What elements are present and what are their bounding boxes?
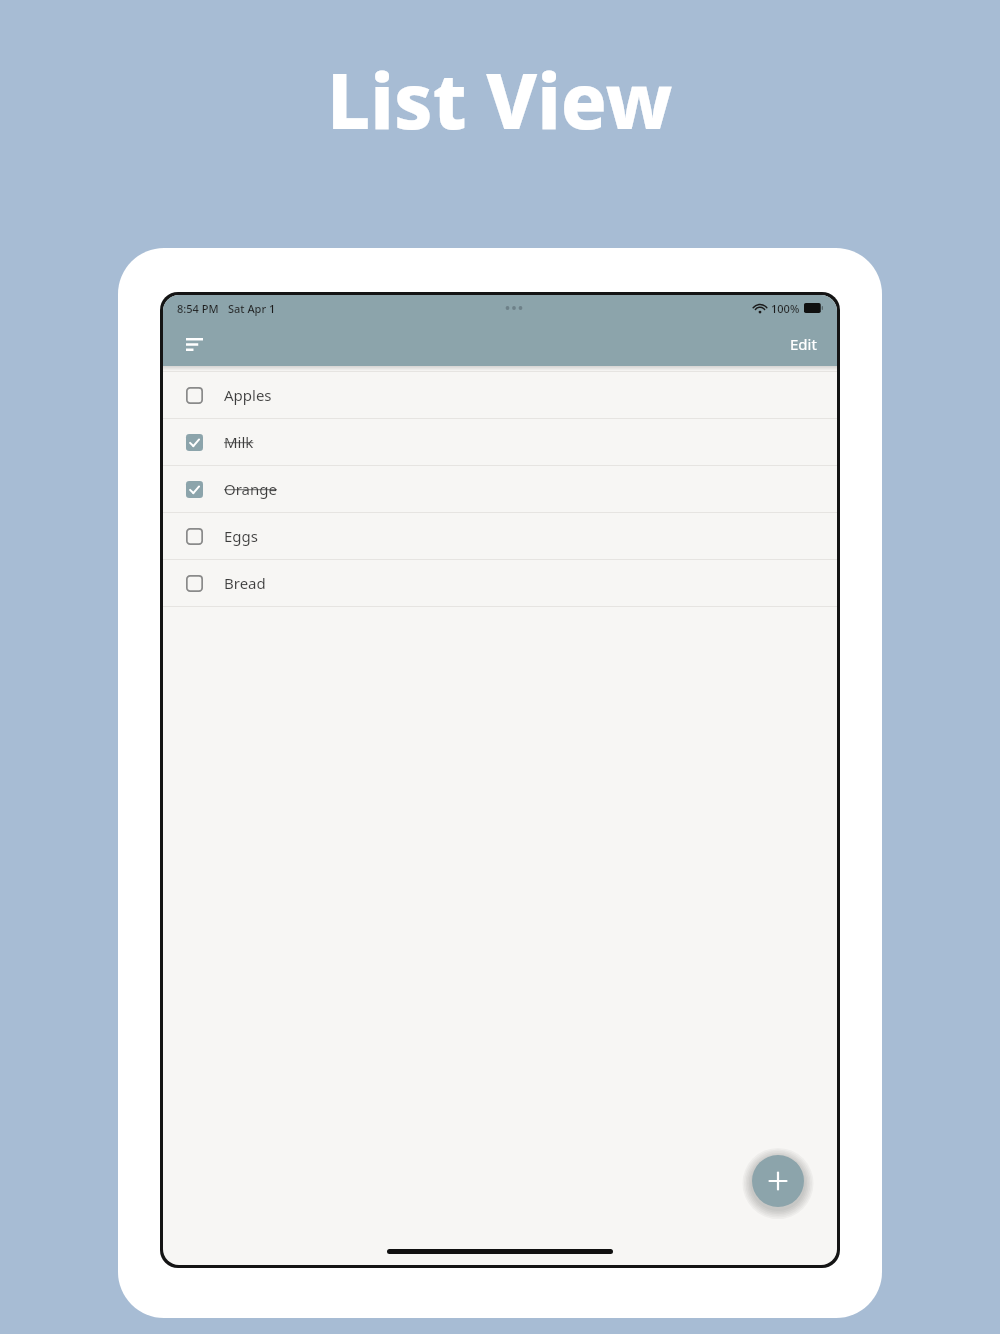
staticText: Apples bbox=[224, 385, 272, 405]
staticText: 100% bbox=[771, 301, 800, 316]
staticText: List View bbox=[327, 48, 673, 152]
staticText: Eggs bbox=[224, 526, 258, 546]
staticText: Bread bbox=[224, 573, 266, 593]
staticText: Edit bbox=[790, 334, 817, 354]
staticText: Milk bbox=[224, 432, 254, 452]
button[interactable]: Eggs bbox=[163, 512, 837, 559]
staticText: Orange bbox=[224, 479, 277, 499]
button[interactable]: Bread bbox=[163, 559, 837, 606]
staticText: Sat Apr 1 bbox=[228, 301, 276, 316]
button[interactable]: Milk bbox=[163, 418, 837, 465]
button[interactable]: Apples bbox=[163, 371, 837, 418]
button[interactable]: Sort bbox=[177, 327, 211, 361]
button[interactable]: Orange bbox=[163, 465, 837, 512]
button[interactable]: Edit bbox=[784, 328, 823, 360]
staticText: 8:54 PM bbox=[177, 301, 219, 316]
button[interactable]: Add item bbox=[752, 1155, 804, 1207]
